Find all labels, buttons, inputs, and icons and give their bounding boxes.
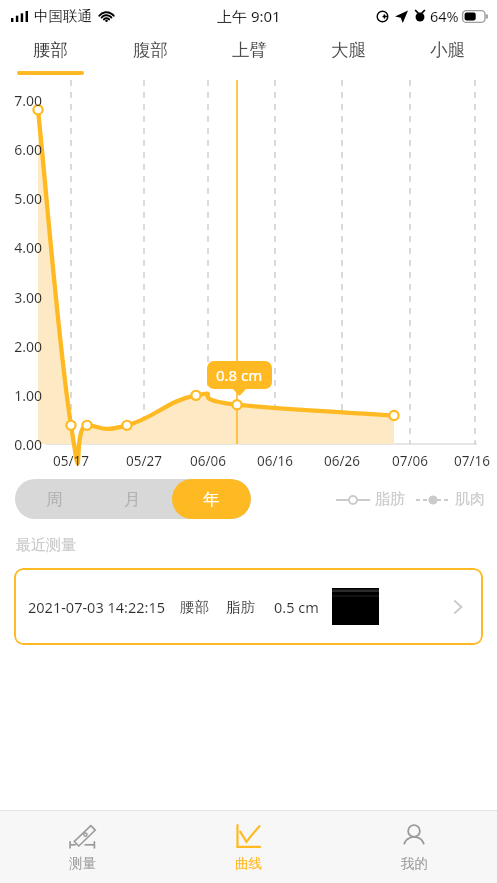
staticText: 05/27	[116, 452, 172, 470]
staticText: 1.00	[1, 386, 42, 405]
staticText: 年	[203, 489, 220, 510]
button[interactable]: 腹部	[100, 32, 200, 80]
staticText: 周	[46, 489, 63, 510]
staticText: 0.8 cm	[216, 365, 263, 385]
button[interactable]: 年	[172, 479, 251, 519]
staticText: 5.00	[1, 189, 42, 208]
button[interactable]: 月	[93, 479, 172, 519]
button[interactable]: 2021-07-03 14:22:15	[14, 568, 483, 645]
staticText: 测量	[69, 855, 96, 872]
staticText: 肌肉	[455, 490, 485, 509]
staticText: 64%	[430, 6, 459, 26]
staticText: 腰部	[180, 598, 209, 616]
staticText: 07/06	[382, 452, 438, 470]
button[interactable]: 肌肉	[416, 490, 485, 509]
staticText: 05/17	[43, 452, 99, 470]
button[interactable]: 小腿	[398, 32, 497, 80]
button[interactable]: 我的	[331, 811, 497, 883]
button[interactable]: 周	[15, 479, 93, 519]
staticText: 中国联通	[34, 7, 92, 25]
staticText: 2021-07-03 14:22:15	[28, 597, 165, 617]
staticText: 腹部	[133, 39, 168, 61]
staticText: 4.00	[1, 238, 42, 257]
staticText: 上午 9:01	[217, 6, 281, 26]
button[interactable]: 测量	[0, 811, 165, 883]
staticText: 2.00	[1, 337, 42, 356]
staticText: 曲线	[235, 855, 262, 872]
staticText: 0.5 cm	[274, 597, 319, 617]
staticText: 大腿	[331, 39, 366, 61]
staticText: 腰部	[33, 39, 68, 61]
staticText: 3.00	[1, 288, 42, 307]
staticText: 7.00	[1, 91, 42, 110]
button[interactable]: 脂肪	[336, 490, 405, 509]
button[interactable]: 大腿	[299, 32, 398, 80]
staticText: 06/26	[314, 452, 370, 470]
staticText: 0.00	[1, 435, 42, 454]
staticText: 06/16	[247, 452, 303, 470]
staticText: 脂肪	[226, 598, 255, 616]
button[interactable]: 上臂	[200, 32, 299, 80]
button[interactable]: 腰部	[0, 32, 100, 80]
staticText: 脂肪	[375, 490, 405, 509]
staticText: 我的	[401, 855, 428, 872]
staticText: 上臂	[232, 39, 267, 61]
staticText: 最近测量	[16, 536, 76, 555]
staticText: 小腿	[430, 39, 465, 61]
staticText: 06/06	[180, 452, 236, 470]
staticText: 07/16	[447, 452, 497, 470]
button[interactable]: 曲线	[165, 811, 331, 883]
staticText: 月	[124, 489, 141, 510]
staticText: 6.00	[1, 140, 42, 159]
other: Details	[449, 596, 471, 618]
